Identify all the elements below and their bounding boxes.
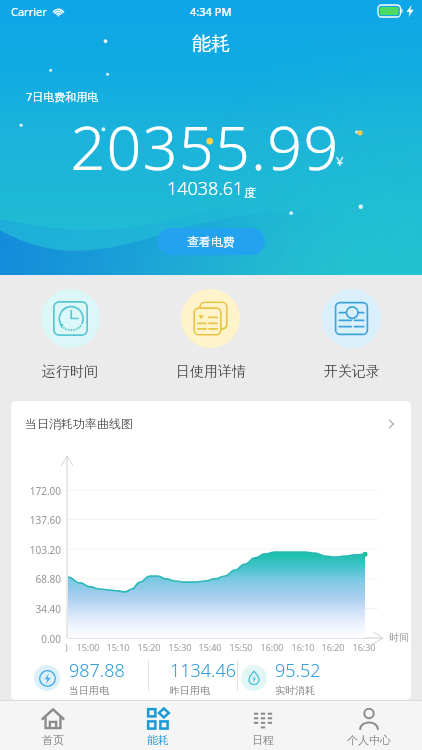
staticText: 16:30 <box>347 641 381 653</box>
staticText: 16:00 <box>255 641 289 653</box>
staticText: 15:00 <box>71 641 105 653</box>
staticText: 能耗 <box>0 32 422 56</box>
staticText: 15:30 <box>163 641 197 653</box>
button[interactable]: 1134.46 <box>148 655 237 700</box>
staticText: 日使用详情 <box>176 363 246 381</box>
staticText: 日程 <box>252 733 274 747</box>
staticText: 15:40 <box>193 641 227 653</box>
staticText: 开关记录 <box>324 363 380 381</box>
button[interactable]: 查看电费 <box>157 228 265 255</box>
staticText: 个人中心 <box>347 733 391 747</box>
staticText: 20355.99 <box>0 105 416 188</box>
staticText: ) <box>65 641 68 653</box>
staticText: 987.88 <box>69 658 125 683</box>
staticText: 95.52 <box>275 658 321 683</box>
staticText: 15:50 <box>224 641 258 653</box>
button[interactable]: 日使用详情 <box>140 275 281 381</box>
button[interactable]: 能耗 <box>105 701 210 750</box>
staticText: 度 <box>244 185 256 200</box>
button[interactable]: 首页 <box>0 701 105 750</box>
staticText: 当日用电 <box>69 684 109 697</box>
staticText: 68.80 <box>21 572 61 586</box>
staticText: 当日消耗功率曲线图 <box>25 416 133 431</box>
staticText: 首页 <box>42 733 64 747</box>
staticText: 14038.61 <box>167 176 244 201</box>
staticText: 7日电费和用电 <box>26 89 99 104</box>
staticText: 运行时间 <box>42 363 98 381</box>
staticText: 4:34 PM <box>190 4 232 19</box>
staticText: 16:20 <box>316 641 350 653</box>
other: More <box>383 416 399 432</box>
staticText: 137.60 <box>21 513 61 527</box>
button[interactable]: 95.52 <box>237 655 347 700</box>
staticText: 查看电费 <box>187 234 235 249</box>
staticText: 昨日用电 <box>170 684 210 697</box>
button[interactable]: 个人中心 <box>316 701 422 750</box>
staticText: 1134.46 <box>170 658 237 683</box>
staticText: 0.00 <box>21 632 61 646</box>
staticText: 172.00 <box>21 484 61 498</box>
staticText: 16:10 <box>286 641 320 653</box>
staticText: 34.40 <box>21 602 61 616</box>
staticText: 15:20 <box>132 641 166 653</box>
staticText: 15:10 <box>101 641 135 653</box>
button[interactable]: 987.88 <box>30 655 140 700</box>
button[interactable]: 开关记录 <box>281 275 422 381</box>
staticText: 实时消耗 <box>275 684 315 697</box>
staticText: ¥ <box>336 152 344 170</box>
staticText: 103.20 <box>21 543 61 557</box>
staticText: Carrier <box>11 4 47 19</box>
button[interactable]: 运行时间 <box>0 275 140 381</box>
staticText: 能耗 <box>147 733 169 747</box>
staticText: 时间 <box>389 631 409 644</box>
button[interactable]: 日程 <box>210 701 316 750</box>
button[interactable]: 当日消耗功率曲线图 <box>11 401 411 446</box>
